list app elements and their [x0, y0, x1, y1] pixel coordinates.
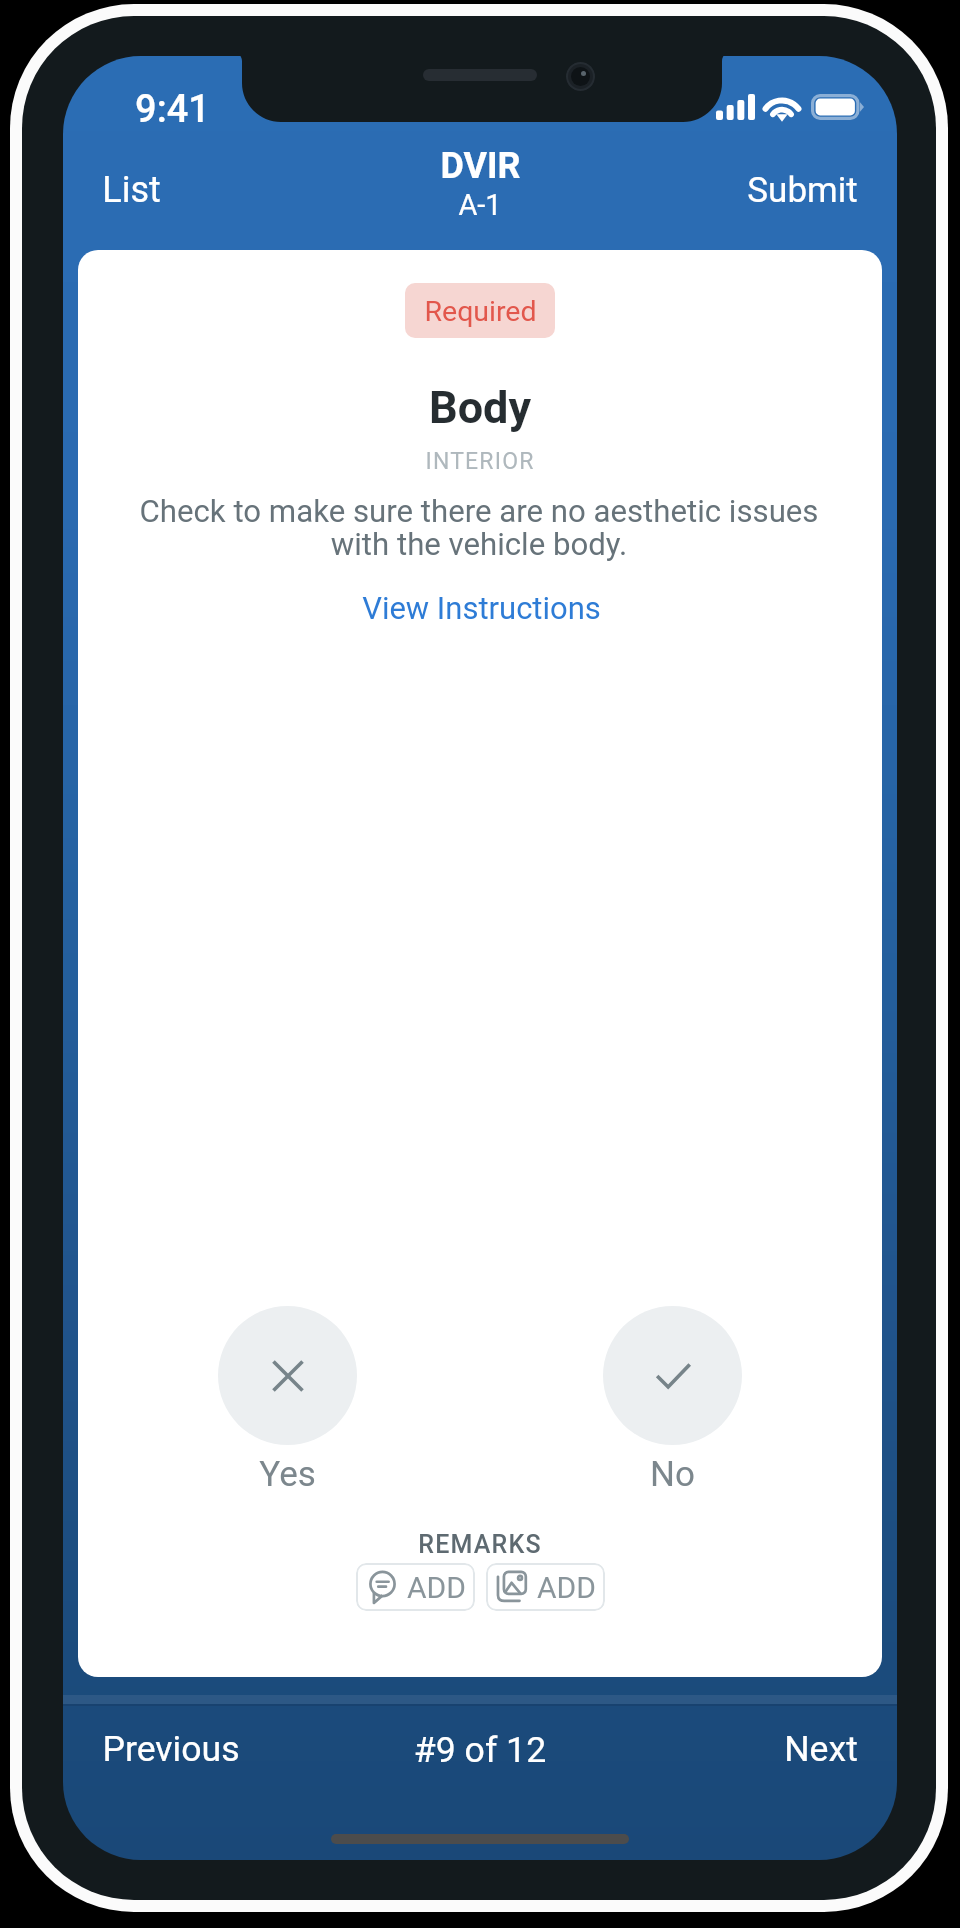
staticText: No	[650, 1454, 695, 1495]
staticText: Submit	[747, 170, 858, 211]
staticText: View Instructions	[362, 590, 601, 626]
staticText: Check to make sure there are no aestheti…	[134, 493, 824, 563]
button[interactable]: Yes	[218, 1306, 357, 1495]
staticText: REMARKS	[78, 1530, 882, 1559]
staticText: #9 of 12	[380, 1729, 580, 1771]
staticText: 9:41	[135, 87, 210, 132]
button[interactable]: View Instructions	[331, 590, 631, 626]
other: Wi-Fi	[764, 93, 800, 120]
button[interactable]: No	[603, 1306, 742, 1495]
other: Cellular signal	[716, 94, 755, 120]
button[interactable]: Previous	[82, 1712, 260, 1786]
button[interactable]: List	[82, 151, 181, 229]
staticText: Yes	[259, 1454, 316, 1495]
staticText: DVIR	[440, 145, 521, 187]
staticText: ADD	[407, 1570, 466, 1605]
button[interactable]: ADD	[486, 1563, 605, 1611]
staticText: Body	[78, 381, 882, 434]
staticText: Previous	[102, 1728, 240, 1770]
staticText: List	[102, 169, 161, 211]
staticText: A-1	[458, 188, 502, 222]
staticText: ADD	[537, 1570, 596, 1605]
button[interactable]: Submit	[727, 152, 878, 229]
button[interactable]: ADD	[356, 1563, 475, 1611]
staticText: Next	[784, 1728, 858, 1770]
staticText: INTERIOR	[78, 448, 882, 475]
button[interactable]: Next	[764, 1712, 878, 1786]
staticText: Required	[424, 295, 537, 328]
other: Battery	[811, 94, 864, 120]
